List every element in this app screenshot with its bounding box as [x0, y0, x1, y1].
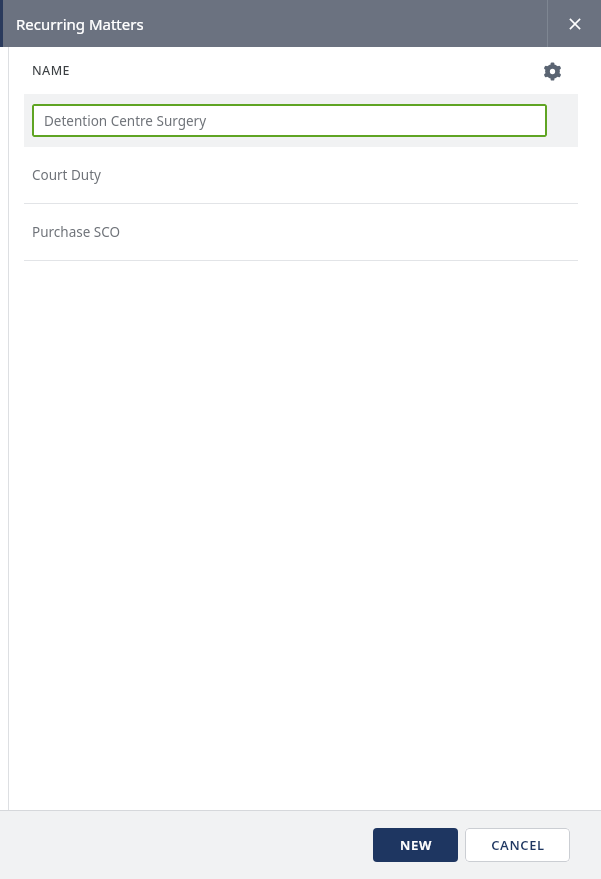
button[interactable]: Court Duty	[0, 147, 601, 203]
button[interactable]: NEW	[373, 828, 458, 862]
button[interactable]: Settings	[539, 58, 565, 84]
staticText: Purchase SCO	[32, 223, 121, 241]
staticText: NEW	[400, 836, 432, 854]
staticText: Detention Centre Surgery	[44, 112, 207, 130]
staticText: NAME	[32, 62, 70, 79]
button[interactable]: CANCEL	[465, 828, 570, 862]
staticText: Recurring Matters	[16, 14, 144, 34]
button[interactable]: Purchase SCO	[0, 204, 601, 260]
button[interactable]: Detention Centre Surgery	[24, 94, 578, 147]
staticText: Court Duty	[32, 166, 101, 184]
button[interactable]: Close	[548, 0, 601, 47]
staticText: CANCEL	[491, 836, 545, 854]
